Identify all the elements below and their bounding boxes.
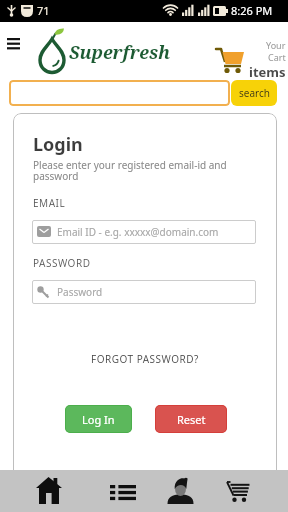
staticText: FORGOT PASSWORD?	[91, 352, 199, 366]
button[interactable]: FORGOT PASSWORD?	[13, 352, 277, 366]
staticText: EMAIL	[33, 196, 66, 210]
button[interactable]	[2, 31, 26, 55]
staticText: Login	[33, 132, 83, 157]
staticText: items	[249, 63, 286, 81]
staticText: Email ID - e.g. xxxxx@domain.com	[57, 225, 219, 239]
button[interactable]: Log In	[65, 405, 132, 433]
staticText: Log In	[82, 412, 115, 427]
staticText: Please enter your registered email-id an…	[33, 158, 227, 183]
button[interactable]	[222, 472, 256, 510]
staticText: 71	[37, 3, 50, 18]
button[interactable]: Your	[210, 39, 288, 81]
button[interactable]	[164, 472, 198, 510]
staticText: Your	[266, 39, 286, 51]
button[interactable]	[106, 472, 140, 510]
button[interactable]: search	[231, 80, 277, 106]
staticText: Reset	[177, 412, 206, 427]
staticText: Cart	[268, 51, 286, 63]
staticText: Superfresh	[69, 40, 170, 65]
staticText: PASSWORD	[33, 256, 91, 270]
button[interactable]: Email ID - e.g. xxxxx@domain.com	[32, 220, 256, 244]
staticText: 8:26 PM	[231, 3, 273, 18]
button[interactable]: Password	[32, 280, 256, 304]
button[interactable]	[32, 472, 66, 510]
staticText: search	[239, 86, 270, 100]
button[interactable]	[9, 80, 230, 106]
button[interactable]: Reset	[155, 405, 227, 433]
staticText: Password	[57, 285, 103, 299]
